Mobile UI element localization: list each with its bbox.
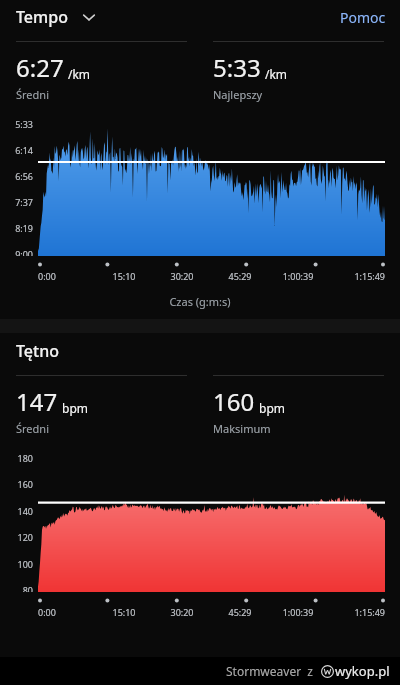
staticText: 140 xyxy=(8,505,33,517)
staticText: 0:00 xyxy=(38,606,95,618)
staticText: Pomoc xyxy=(340,8,386,27)
button[interactable]: Tętno xyxy=(0,338,69,364)
staticText: Tempo xyxy=(16,6,68,28)
staticText: Stormweaver z xyxy=(226,663,313,679)
staticText: bpm xyxy=(259,400,285,416)
staticText: Najlepszy xyxy=(213,87,263,102)
staticText: /km xyxy=(68,66,91,82)
staticText: 1:00:39 xyxy=(269,270,327,282)
staticText: 15:10 xyxy=(95,606,153,618)
other: Rozwiń listę xyxy=(82,10,96,24)
staticText: 5:33 xyxy=(8,118,33,130)
staticText: Średni xyxy=(16,87,49,102)
staticText: wykop.pl xyxy=(335,662,390,680)
staticText: Średni xyxy=(16,421,49,436)
staticText: 0:00 xyxy=(38,270,95,282)
staticText: 1:15:49 xyxy=(327,606,385,618)
staticText: 30:20 xyxy=(153,606,211,618)
staticText: 45:29 xyxy=(211,606,269,618)
staticText: 6:14 xyxy=(8,144,33,156)
staticText: 7:37 xyxy=(8,196,33,208)
staticText: 30:20 xyxy=(153,270,211,282)
staticText: /km xyxy=(265,66,288,82)
staticText: 8:19 xyxy=(8,222,33,234)
staticText: bpm xyxy=(62,400,88,416)
staticText: Maksimum xyxy=(213,421,271,436)
staticText: 180 xyxy=(8,452,33,464)
staticText: 120 xyxy=(8,531,33,543)
staticText: Czas (g:m:s) xyxy=(0,294,400,309)
staticText: 147 xyxy=(16,385,58,418)
staticText: 6:27 xyxy=(16,51,64,84)
staticText: 80 xyxy=(8,584,33,592)
staticText: 160 xyxy=(213,385,255,418)
button[interactable]: Tempo xyxy=(0,4,104,30)
staticText: 45:29 xyxy=(211,270,269,282)
staticText: 1:00:39 xyxy=(269,606,327,618)
staticText: 15:10 xyxy=(95,270,153,282)
staticText: Tętno xyxy=(16,340,59,362)
button[interactable]: Pomoc xyxy=(326,4,400,31)
staticText: 6:56 xyxy=(8,170,33,182)
staticText: 1:15:49 xyxy=(327,270,385,282)
staticText: 9:00 xyxy=(8,248,33,256)
staticText: 160 xyxy=(8,478,33,490)
staticText: 100 xyxy=(8,558,33,570)
staticText: 5:33 xyxy=(213,51,261,84)
